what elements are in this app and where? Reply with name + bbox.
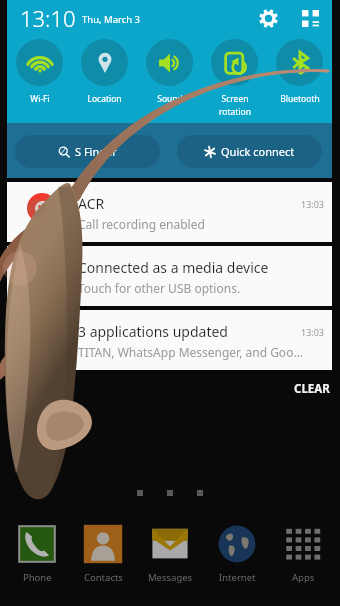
staticText: 13:10 bbox=[20, 3, 76, 33]
button[interactable]: Screen rotation bbox=[202, 35, 267, 123]
button[interactable]: 3 applications updated bbox=[7, 310, 332, 370]
staticText: ACR bbox=[78, 194, 105, 213]
staticText: Touch for other USB options. bbox=[78, 280, 241, 296]
staticText: Location bbox=[87, 93, 122, 105]
staticText: 13:03 bbox=[301, 198, 325, 210]
staticText: Internet bbox=[219, 571, 256, 584]
staticText: TITAN, WhatsApp Messenger, and Goo… bbox=[78, 344, 303, 360]
button[interactable]: Location bbox=[72, 35, 137, 123]
staticText: Screen rotation bbox=[219, 93, 251, 118]
staticText: CLEAR bbox=[294, 381, 330, 397]
button[interactable]: Apps bbox=[273, 524, 333, 584]
staticText: 3 applications updated bbox=[78, 322, 228, 341]
staticText: Bluetooth bbox=[280, 93, 320, 105]
button[interactable]: Connected as a media device bbox=[7, 246, 332, 306]
staticText: Thu, March 3 bbox=[82, 13, 141, 26]
staticText: Messages bbox=[148, 571, 193, 584]
staticText: Connected as a media device bbox=[78, 258, 269, 277]
staticText: S Finder bbox=[75, 144, 117, 159]
staticText: Call recording enabled bbox=[78, 216, 205, 232]
button[interactable]: Phone bbox=[7, 524, 67, 584]
button[interactable]: S Finder bbox=[15, 135, 160, 168]
button[interactable]: ACR bbox=[7, 182, 332, 242]
button[interactable]: Wi-Fi bbox=[7, 35, 72, 123]
staticText: Quick connect bbox=[221, 144, 295, 159]
button[interactable]: Quick connect bbox=[177, 135, 322, 168]
button[interactable]: Messages bbox=[140, 524, 200, 584]
staticText: Apps bbox=[292, 571, 315, 584]
staticText: Sound bbox=[157, 93, 183, 105]
button[interactable]: CLEAR bbox=[292, 375, 332, 403]
staticText: Phone bbox=[23, 571, 52, 584]
staticText: Contacts bbox=[84, 571, 123, 584]
button[interactable]: Settings bbox=[257, 7, 279, 29]
staticText: Wi-Fi bbox=[30, 93, 50, 105]
button[interactable]: Bluetooth bbox=[267, 35, 332, 123]
staticText: 13:03 bbox=[301, 326, 325, 338]
button[interactable]: Sound bbox=[137, 35, 202, 123]
button[interactable]: Edit quick settings bbox=[299, 7, 321, 29]
button[interactable]: Contacts bbox=[73, 524, 133, 584]
button[interactable]: Internet bbox=[207, 524, 267, 584]
